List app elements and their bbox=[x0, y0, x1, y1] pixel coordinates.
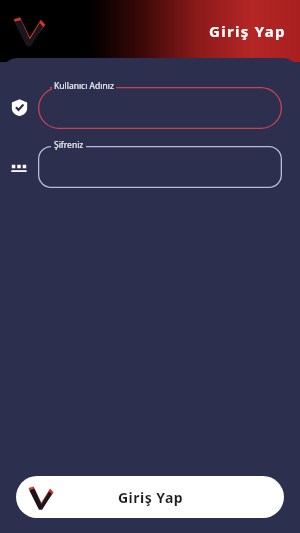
button[interactable]: Secure account bbox=[0, 80, 38, 129]
staticText: Şifreniz bbox=[54, 139, 84, 151]
button[interactable]: Şifreniz bbox=[38, 139, 282, 188]
button[interactable]: Kullanıcı Adınız bbox=[38, 80, 282, 129]
staticText: Giriş Yap bbox=[36, 488, 265, 507]
button[interactable]: Giriş Yap bbox=[16, 476, 284, 518]
staticText: Giriş Yap bbox=[209, 21, 286, 41]
button[interactable]: Password bbox=[0, 139, 38, 188]
staticText: Kullanıcı Adınız bbox=[54, 80, 114, 92]
